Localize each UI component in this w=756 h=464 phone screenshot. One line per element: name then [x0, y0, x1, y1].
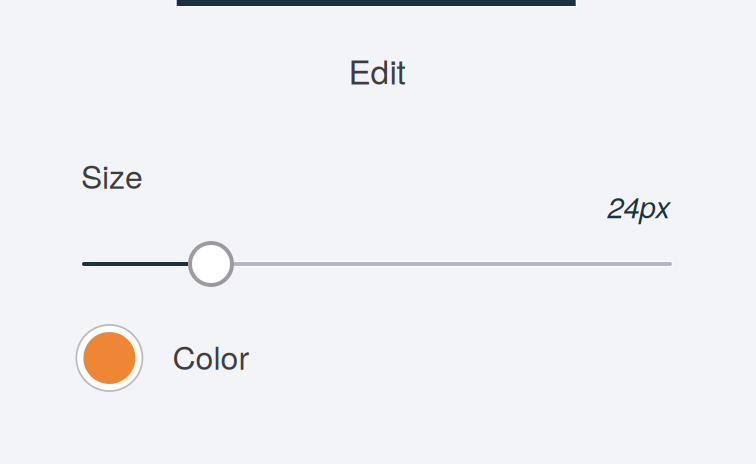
- staticText: Color: [172, 333, 249, 379]
- button[interactable]: Size, 24 pixels: [188, 241, 234, 287]
- staticText: 24px: [607, 185, 670, 227]
- staticText: Size: [81, 152, 143, 198]
- button[interactable]: Color: [75, 324, 675, 392]
- staticText: Edit: [348, 46, 405, 94]
